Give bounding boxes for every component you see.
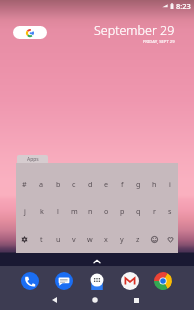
staticText: u	[56, 234, 61, 244]
button[interactable]: Gmail	[121, 272, 139, 290]
button[interactable]: Home	[83, 290, 107, 310]
staticText: v	[72, 234, 76, 244]
staticText: z	[136, 234, 140, 244]
button[interactable]: d	[82, 178, 98, 190]
staticText: x	[104, 234, 108, 244]
button[interactable]: w	[82, 233, 98, 245]
staticText: e	[104, 179, 109, 189]
button[interactable]: g	[130, 178, 146, 190]
staticText: o	[104, 206, 109, 216]
staticText: y	[120, 234, 124, 244]
button[interactable]: Favourite	[162, 233, 178, 245]
button[interactable]: u	[50, 233, 66, 245]
staticText: j	[24, 206, 26, 216]
staticText: September 29	[94, 22, 175, 39]
button[interactable]: y	[114, 233, 130, 245]
button[interactable]: v	[66, 233, 82, 245]
staticText: k	[40, 206, 44, 216]
staticText: g	[136, 179, 141, 189]
staticText: d	[88, 179, 93, 189]
button[interactable]: k	[33, 205, 50, 217]
button[interactable]: Back	[42, 290, 66, 310]
button[interactable]: Messages	[55, 272, 73, 290]
other: Emoji	[151, 236, 158, 243]
staticText: a	[39, 179, 44, 189]
button[interactable]: s	[162, 205, 178, 217]
button[interactable]: Phone	[21, 272, 39, 290]
button[interactable]: Recents	[124, 290, 148, 310]
button[interactable]: o	[98, 205, 114, 217]
staticText: r	[153, 206, 156, 216]
staticText: f	[121, 179, 124, 189]
staticText: c	[72, 179, 76, 189]
staticText: m	[71, 206, 78, 216]
staticText: p	[120, 206, 125, 216]
button[interactable]: m	[66, 205, 82, 217]
button[interactable]: Chrome	[154, 272, 172, 290]
staticText: q	[136, 206, 141, 216]
staticText: l	[57, 206, 59, 216]
staticText: FRIDAY, SEPT 29	[143, 39, 175, 45]
button[interactable]: x	[98, 233, 114, 245]
button[interactable]: t	[33, 233, 50, 245]
button[interactable]: Google Search	[13, 26, 47, 39]
staticText: n	[88, 206, 93, 216]
other: Favourite	[167, 236, 174, 243]
other: Settings	[21, 236, 28, 243]
staticText: t	[40, 234, 43, 244]
staticText: b	[56, 179, 61, 189]
button[interactable]: n	[82, 205, 98, 217]
staticText: Apps	[27, 156, 39, 163]
button[interactable]: l	[50, 205, 66, 217]
button[interactable]: Settings	[16, 233, 33, 245]
button[interactable]: h	[146, 178, 162, 190]
button[interactable]: Apps	[17, 155, 48, 164]
staticText: h	[152, 179, 157, 189]
button[interactable]: e	[98, 178, 114, 190]
button[interactable]: All apps	[88, 272, 106, 290]
button[interactable]: Emoji	[146, 233, 162, 245]
staticText: 8:23	[176, 1, 191, 11]
staticText: s	[168, 206, 172, 216]
button[interactable]: #	[16, 178, 33, 190]
staticText: w	[87, 234, 93, 244]
staticText: i	[169, 179, 171, 189]
button[interactable]: q	[130, 205, 146, 217]
button[interactable]: a	[33, 178, 50, 190]
button[interactable]: All apps	[0, 256, 194, 266]
button[interactable]: z	[130, 233, 146, 245]
button[interactable]: b	[50, 178, 66, 190]
button[interactable]: f	[114, 178, 130, 190]
button[interactable]: r	[146, 205, 162, 217]
button[interactable]: c	[66, 178, 82, 190]
button[interactable]: p	[114, 205, 130, 217]
button[interactable]: i	[162, 178, 178, 190]
button[interactable]: j	[16, 205, 33, 217]
staticText: #	[22, 179, 27, 189]
